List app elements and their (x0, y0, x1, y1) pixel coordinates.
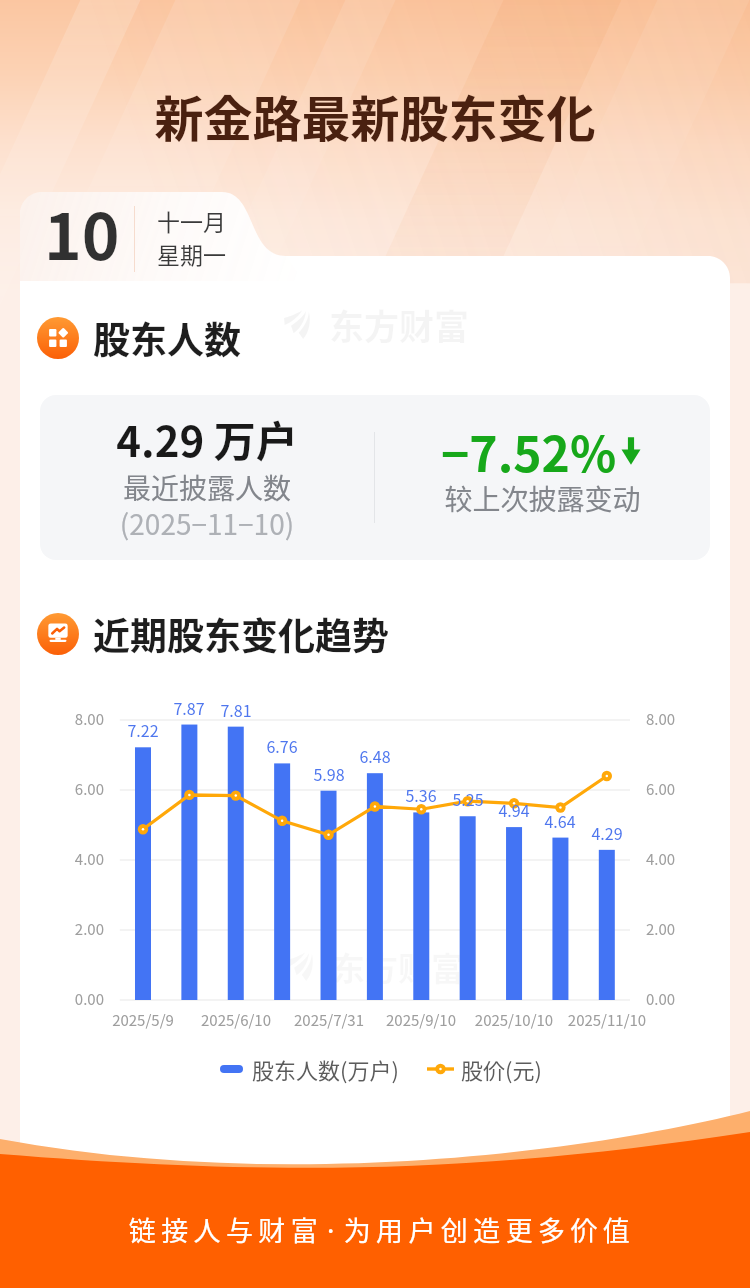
staticText: 2025/5/9 (88, 1009, 198, 1031)
staticText: 8.00 (646, 708, 676, 730)
button[interactable]: Shareholders (37, 311, 241, 365)
staticText: 2.00 (646, 918, 676, 940)
staticText: 4.29 万户 (40, 408, 374, 469)
button[interactable]: 10 (20, 192, 282, 283)
other: Trend (37, 613, 79, 655)
staticText: 较上次披露变动 (375, 478, 710, 519)
button[interactable]: 新金路最新股东变化 (0, 80, 750, 151)
staticText: 0.00 (646, 988, 676, 1010)
staticText: 2025/7/31 (274, 1009, 384, 1031)
staticText: 6.48 (345, 744, 405, 767)
staticText: 股东人数 (93, 311, 241, 365)
staticText: 十一月 (157, 204, 226, 237)
staticText: 2025/9/10 (366, 1009, 476, 1031)
staticText: 6.00 (646, 778, 676, 800)
staticText: 东方财富 (329, 299, 470, 350)
button[interactable]: 链接人与财富·为用户创造更多价值 (7, 1210, 750, 1249)
staticText: 链接人与财富·为用户创造更多价值 (7, 1210, 750, 1249)
staticText: 8.00 (44, 708, 104, 730)
staticText: 2025/6/10 (181, 1009, 291, 1031)
staticText: 2.00 (44, 918, 104, 940)
staticText: 东方财富 (332, 943, 464, 991)
staticText: 4.94 (484, 798, 544, 821)
staticText: 近期股东变化趋势 (93, 607, 389, 661)
staticText: 7.22 (113, 718, 173, 741)
staticText: 4.64 (530, 809, 590, 832)
staticText: 6.00 (44, 778, 104, 800)
staticText: 7.87 (159, 696, 219, 719)
staticText: 股东人数(万户) (252, 1053, 399, 1085)
staticText: 星期一 (157, 237, 226, 270)
staticText: 0.00 (44, 988, 104, 1010)
staticText: −7.52% (441, 416, 617, 486)
other: Shareholders (37, 317, 79, 359)
staticText: 10 (44, 186, 120, 277)
staticText: 股价(元) (461, 1053, 542, 1085)
staticText: 5.36 (391, 783, 451, 806)
button[interactable]: 股东人数(万户) (220, 1053, 399, 1085)
staticText: 5.98 (299, 762, 359, 785)
staticText: 4.00 (44, 848, 104, 870)
staticText: 2025/11/10 (552, 1009, 662, 1031)
staticText: 2025/10/10 (459, 1009, 569, 1031)
button[interactable]: 4.29 万户 (40, 395, 710, 560)
button[interactable]: 股价(元) (427, 1053, 542, 1085)
staticText: 4.00 (646, 848, 676, 870)
staticText: 7.81 (206, 698, 266, 721)
staticText: 4.29 (577, 821, 637, 844)
button[interactable]: Trend (37, 607, 389, 661)
staticText: 新金路最新股东变化 (0, 80, 750, 151)
staticText: 最近披露人数 (40, 467, 374, 508)
staticText: 6.76 (252, 734, 312, 757)
staticText: (2025−11−10) (40, 503, 374, 544)
staticText: 5.25 (438, 787, 498, 810)
